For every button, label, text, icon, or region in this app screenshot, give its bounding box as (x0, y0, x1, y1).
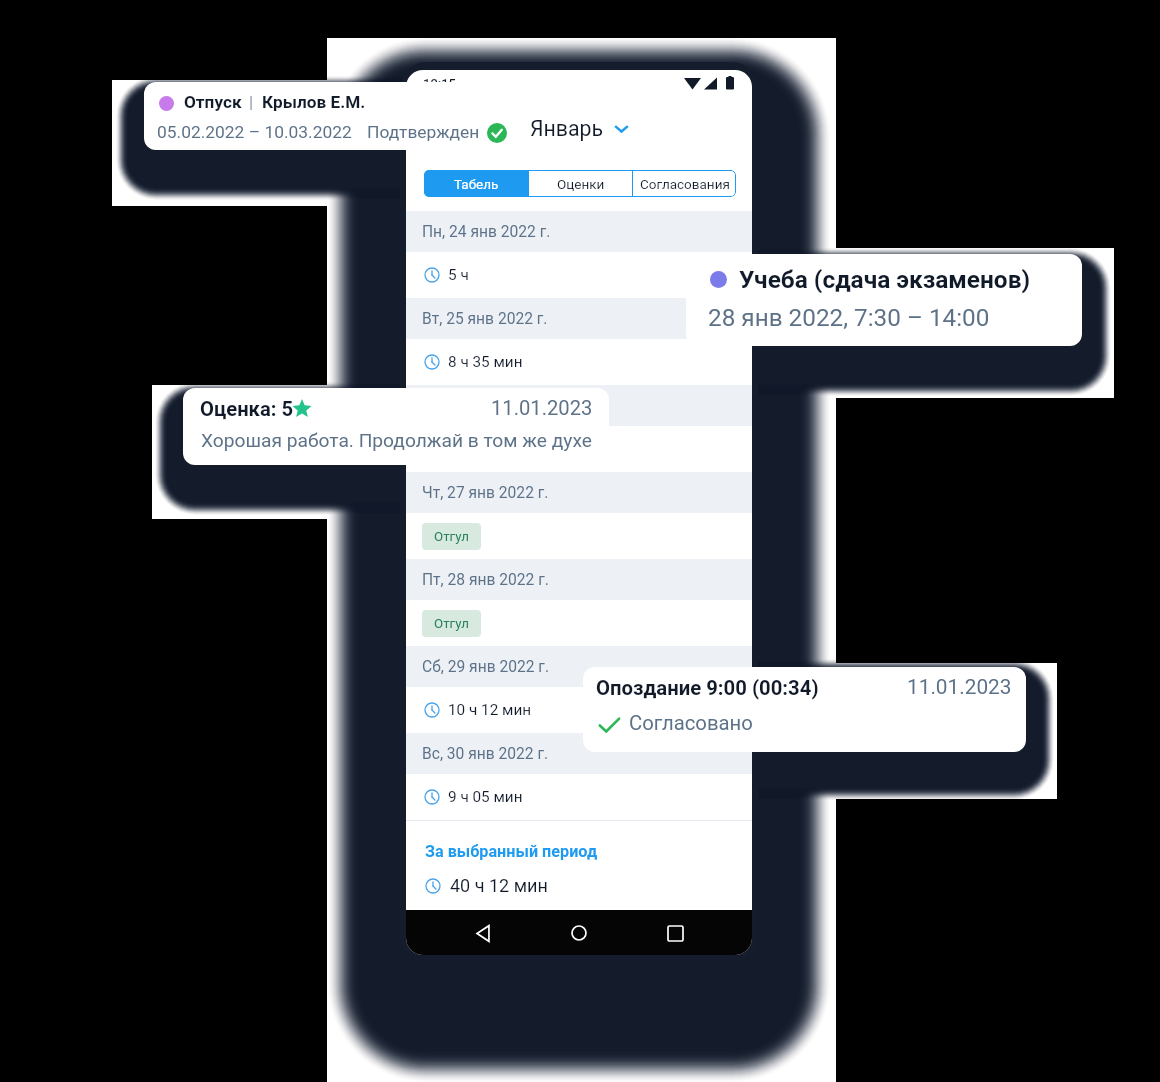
button[interactable]: Отгул (406, 600, 752, 646)
button[interactable]: 8 ч 35 мин (406, 339, 752, 385)
staticText: Согласовано (629, 711, 753, 735)
button[interactable]: Отпуск (144, 82, 524, 150)
staticText: Табель (454, 176, 499, 192)
staticText: Пт, 28 янв 2022 г. (422, 571, 549, 589)
button[interactable]: Опоздание 9:00 (00:34) (583, 667, 1026, 752)
button[interactable]: Home (564, 918, 594, 948)
button[interactable]: Учеба (сдача экзаменов) (686, 254, 1082, 346)
staticText: Согласования (640, 176, 730, 192)
staticText: Ср, 26 янв 2022 г. (422, 397, 550, 415)
staticText: Отпуск (184, 92, 242, 112)
button[interactable]: Табель (424, 170, 528, 197)
other: Home (571, 925, 587, 941)
staticText: Отгул (434, 616, 469, 632)
staticText: За выбранный период (425, 842, 598, 861)
button[interactable]: Оценки (529, 170, 632, 197)
staticText: Чт, 27 янв 2022 г. (422, 484, 549, 502)
staticText: 40 ч 12 мин (450, 875, 548, 896)
button[interactable]: 9 ч 05 мин (406, 774, 752, 820)
staticText: Оценка: 5 (200, 397, 294, 421)
button[interactable]: Согласования (633, 170, 736, 197)
button[interactable]: Отгул (406, 513, 752, 559)
staticText: 05.02.2022 – 10.03.2022 (157, 122, 352, 142)
staticText: 9 ч 05 мин (448, 788, 523, 806)
button[interactable]: Back (468, 918, 498, 948)
staticText: Пн, 24 янв 2022 г. (422, 223, 551, 241)
staticText: Крылов Е.М. (262, 92, 366, 112)
staticText: 8 ч 35 мин (448, 353, 523, 371)
other: Back (475, 925, 492, 942)
button[interactable]: Январь (406, 96, 752, 160)
staticText: 11.01.2023 (907, 675, 1012, 699)
staticText: Сб, 29 янв 2022 г. (422, 658, 550, 676)
staticText: Вс, 30 янв 2022 г. (422, 745, 549, 763)
staticText: 5 ч (448, 266, 469, 284)
staticText: Январь (530, 116, 604, 141)
staticText: Учеба (сдача экзаменов) (739, 265, 1031, 294)
staticText: Хорошая работа. Продолжай в том же духе (201, 429, 592, 452)
button[interactable]: Recent apps (660, 918, 690, 948)
staticText: 12:15 (423, 76, 457, 91)
staticText: 11.01.2023 (491, 396, 593, 420)
staticText: 10 ч 12 мин (448, 701, 532, 719)
button[interactable]: 7 ч 40 мин (406, 426, 752, 472)
staticText: 28 янв 2022, 7:30 – 14:00 (708, 303, 990, 331)
staticText: Подтвержден (367, 122, 480, 142)
staticText: Оценки (557, 176, 605, 192)
staticText: Вт, 25 янв 2022 г. (422, 310, 548, 328)
staticText: | (249, 92, 254, 112)
staticText: Отгул (434, 529, 469, 545)
staticText: Опоздание 9:00 (00:34) (596, 676, 819, 700)
staticText: 7 ч 40 мин (448, 440, 523, 458)
other: Recent apps (668, 926, 683, 941)
button[interactable]: Оценка: 5 (183, 388, 609, 465)
button[interactable]: 10 ч 12 мин (406, 687, 752, 733)
button[interactable]: 5 ч (406, 252, 752, 298)
